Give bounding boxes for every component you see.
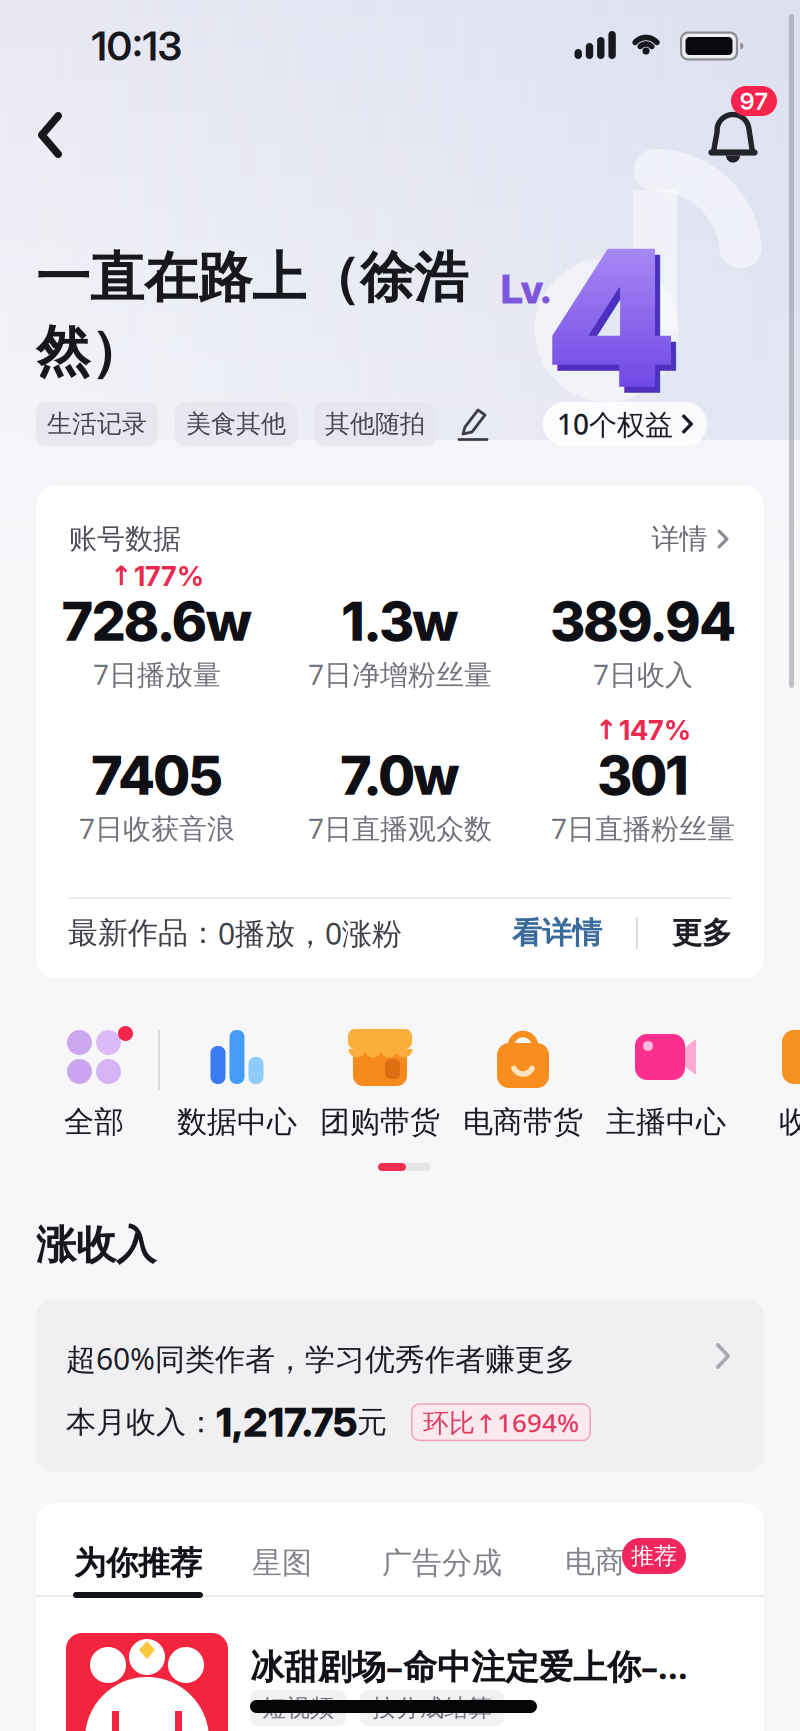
button[interactable]: 10个权益	[543, 402, 707, 446]
staticText: 其他随拍	[325, 408, 425, 440]
button[interactable]: Notifications	[694, 86, 778, 164]
staticText: 然）	[36, 318, 144, 386]
staticText: 389.94	[550, 588, 736, 654]
staticText: 7日收获音浪	[79, 809, 235, 847]
staticText: 为你推荐	[74, 1543, 202, 1583]
staticText: 电商带货	[463, 1103, 583, 1141]
button[interactable]: 详情	[651, 521, 728, 557]
staticText: 0播放，0涨粉	[218, 913, 402, 953]
staticText: 97	[739, 86, 768, 115]
button[interactable]: Edit profile tags	[453, 402, 493, 446]
staticText: 7日收入	[593, 655, 693, 693]
staticText: 短视频	[262, 1693, 334, 1723]
staticText: 全部	[64, 1103, 124, 1141]
staticText: 301	[597, 742, 689, 808]
staticText: 超60%同类作者，学习优秀作者赚更多	[66, 1338, 575, 1379]
staticText: 生活记录	[47, 408, 147, 440]
staticText: 4	[549, 209, 682, 439]
staticText: 按分成结算	[372, 1693, 492, 1723]
button[interactable]: 为你推荐	[48, 1533, 228, 1593]
staticText: 147%	[619, 713, 691, 747]
staticText: 最新作品：	[68, 914, 218, 952]
button[interactable]: 数据中心	[169, 1026, 305, 1141]
staticText: 728.6w	[61, 588, 252, 654]
staticText: 7日直播观众数	[308, 809, 492, 847]
staticText: 星图	[252, 1544, 312, 1582]
staticText: 1,217.75	[216, 1398, 357, 1446]
staticText: 1.3w	[341, 588, 459, 654]
staticText: 美食其他	[186, 408, 286, 440]
staticText: 7日直播粉丝量	[551, 809, 735, 847]
button[interactable]: 收入	[741, 1026, 800, 1141]
staticText: 一直在路上（徐浩	[36, 244, 468, 312]
button[interactable]: 冰甜剧场–命中注定爱上你–...	[36, 1503, 764, 1731]
button[interactable]: 广告分成	[357, 1533, 527, 1593]
staticText: 看详情	[512, 914, 602, 952]
staticText: 7.0w	[340, 742, 460, 808]
button[interactable]: 电商带货	[455, 1026, 591, 1141]
staticText: 主播中心	[606, 1103, 726, 1141]
staticText: 收入	[779, 1103, 800, 1141]
button[interactable]: 主播中心	[598, 1026, 734, 1141]
staticText: 元	[357, 1403, 387, 1441]
button[interactable]: 全部	[26, 1026, 162, 1141]
staticText: 涨收入	[36, 1220, 156, 1270]
button[interactable]: 星图	[227, 1533, 337, 1593]
staticText: ↑	[595, 714, 618, 746]
button[interactable]: 电商	[559, 1531, 689, 1579]
staticText: 177%	[134, 559, 204, 593]
staticText: 7日净增粉丝量	[308, 655, 492, 693]
button[interactable]: 团购带货	[312, 1026, 448, 1141]
button[interactable]: 更多	[672, 914, 732, 952]
button[interactable]: 超60%同类作者，学习优秀作者赚更多	[36, 1300, 764, 1472]
staticText: 本月收入：	[66, 1403, 216, 1441]
staticText: Lv.	[500, 265, 551, 313]
staticText: 10个权益	[557, 405, 673, 443]
staticText: 7405	[91, 742, 223, 808]
button[interactable]: 看详情	[512, 914, 602, 952]
staticText: 账号数据	[69, 521, 181, 557]
staticText: 电商	[565, 1543, 625, 1581]
staticText: 团购带货	[320, 1103, 440, 1141]
staticText: 7日播放量	[93, 655, 221, 693]
staticText: 冰甜剧场–命中注定爱上你–...	[250, 1643, 688, 1689]
staticText: 环比↑1694%	[423, 1404, 579, 1440]
staticText: 推荐	[631, 1541, 677, 1570]
staticText: 详情	[651, 521, 707, 557]
staticText: 广告分成	[382, 1544, 502, 1582]
staticText: 10:13	[91, 22, 182, 70]
staticText: 更多	[672, 914, 732, 952]
staticText: ↑	[110, 560, 133, 592]
staticText: 数据中心	[177, 1103, 297, 1141]
button[interactable]: Back	[22, 100, 78, 170]
